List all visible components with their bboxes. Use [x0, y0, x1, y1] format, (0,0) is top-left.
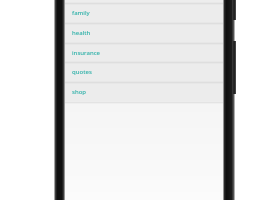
staticText: family — [72, 9, 90, 17]
staticText: health — [72, 29, 91, 37]
button[interactable]: Power button — [233, 0, 236, 20]
staticText: shop — [72, 88, 87, 96]
button[interactable]: health — [63, 23, 224, 43]
button[interactable]: insurance — [63, 43, 224, 63]
button[interactable]: family — [63, 3, 224, 23]
button[interactable]: shop — [63, 82, 224, 102]
button[interactable]: Volume buttons — [233, 41, 236, 94]
button[interactable]: quotes — [63, 62, 224, 82]
staticText: insurance — [72, 49, 101, 57]
staticText: quotes — [72, 68, 92, 76]
